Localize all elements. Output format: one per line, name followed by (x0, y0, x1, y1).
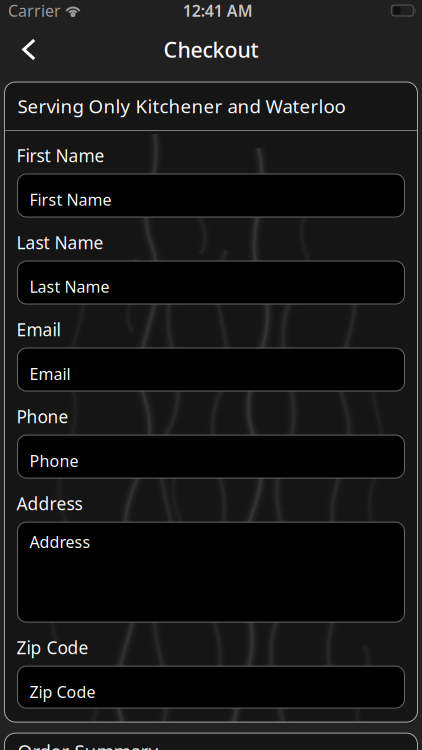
staticText: Address (29, 531, 90, 552)
staticText: 12:41 AM (183, 0, 253, 21)
button[interactable]: First Name (17, 174, 404, 217)
button[interactable]: Back (6, 26, 52, 72)
button[interactable]: Zip Code (17, 666, 404, 708)
staticText: First Name (29, 189, 111, 210)
staticText: Phone (29, 450, 78, 471)
staticText: First Name (16, 144, 104, 167)
button[interactable]: Phone (17, 435, 404, 478)
button[interactable]: Address (17, 522, 404, 622)
staticText: Email (16, 318, 60, 341)
staticText: Zip Code (16, 636, 88, 659)
staticText: Carrier (8, 0, 61, 21)
staticText: Address (16, 492, 82, 515)
staticText: Zip Code (29, 681, 95, 702)
staticText: Order Summary (17, 739, 158, 750)
staticText: Checkout (163, 35, 258, 64)
staticText: Last Name (29, 276, 109, 297)
staticText: Phone (16, 405, 68, 428)
button[interactable]: Email (17, 348, 404, 391)
staticText: Last Name (16, 231, 103, 254)
button[interactable]: Last Name (17, 261, 404, 304)
staticText: Serving Only Kitchener and Waterloo (17, 94, 345, 118)
staticText: Email (29, 363, 70, 384)
